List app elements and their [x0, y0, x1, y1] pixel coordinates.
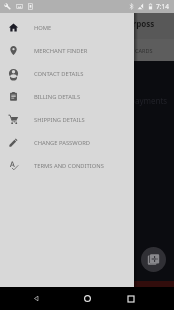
staticText: HOME [34, 24, 52, 32]
staticText: CARDS [135, 47, 153, 54]
button[interactable]: CHANGE PASSWORD [0, 131, 134, 154]
button[interactable]: Back [25, 287, 47, 310]
button[interactable]: Add card [141, 247, 166, 272]
staticText: CHANGE PASSWORD [34, 139, 91, 147]
button[interactable]: SHIPPING DETAILS [0, 108, 134, 131]
button[interactable]: HOME [0, 16, 134, 39]
staticText: TERMS AND CONDITIONS [34, 162, 104, 170]
button[interactable]: MERCHANT FINDER [0, 39, 134, 62]
staticText: Interposs [116, 18, 155, 29]
button[interactable]: Home [76, 287, 98, 310]
button[interactable]: Recent apps [120, 287, 142, 310]
staticText: 7:14 [156, 2, 169, 11]
button[interactable]: TERMS AND CONDITIONS [0, 154, 134, 177]
staticText: BILLING DETAILS [34, 93, 81, 101]
staticText: CONTACT DETAILS [34, 70, 84, 78]
staticText: SHIPPING DETAILS [34, 116, 85, 124]
staticText: No payments [117, 95, 168, 106]
button[interactable]: BILLING DETAILS [0, 85, 134, 108]
button[interactable]: CONTACT DETAILS [0, 62, 134, 85]
staticText: MERCHANT FINDER [34, 47, 88, 55]
